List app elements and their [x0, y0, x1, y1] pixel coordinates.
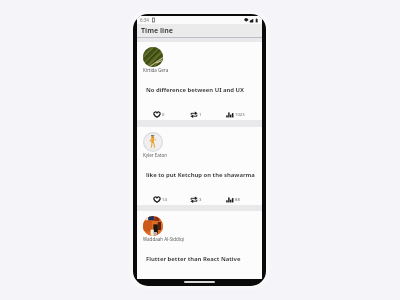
- button[interactable]: Profile photo: [137, 42, 262, 120]
- button[interactable]: Like: [153, 196, 167, 203]
- staticText: 14: [162, 197, 167, 203]
- staticText: 88: [235, 197, 240, 203]
- button[interactable]: Profile photo: [137, 127, 262, 205]
- button[interactable]: Like: [153, 111, 165, 118]
- button[interactable]: Views: [226, 196, 240, 203]
- staticText: Flutter better than React Native: [146, 255, 241, 263]
- staticText: Time line: [141, 26, 173, 36]
- staticText: 1: [199, 112, 202, 118]
- staticText: Waddaah Al-Siddiqi: [143, 236, 184, 242]
- staticText: like to put Ketchup on the shawarma: [146, 171, 255, 179]
- button[interactable]: Profile photo: [143, 47, 163, 67]
- button[interactable]: Profile photo: [143, 216, 163, 236]
- button[interactable]: Time line: [137, 24, 262, 37]
- button[interactable]: Profile photo: [143, 132, 163, 152]
- staticText: 6:34: [140, 17, 149, 23]
- button[interactable]: Retweet: [190, 111, 202, 118]
- button[interactable]: Views: [226, 111, 245, 118]
- staticText: Kyler Eaton: [143, 152, 167, 158]
- staticText: No difference between UI and UX: [146, 86, 245, 94]
- staticText: 1023: [235, 112, 245, 118]
- staticText: 0: [162, 112, 165, 118]
- staticText: 3: [199, 197, 202, 203]
- button[interactable]: Profile photo: [137, 211, 262, 279]
- button[interactable]: Retweet: [190, 196, 202, 203]
- staticText: Kirtida Gera: [143, 67, 169, 73]
